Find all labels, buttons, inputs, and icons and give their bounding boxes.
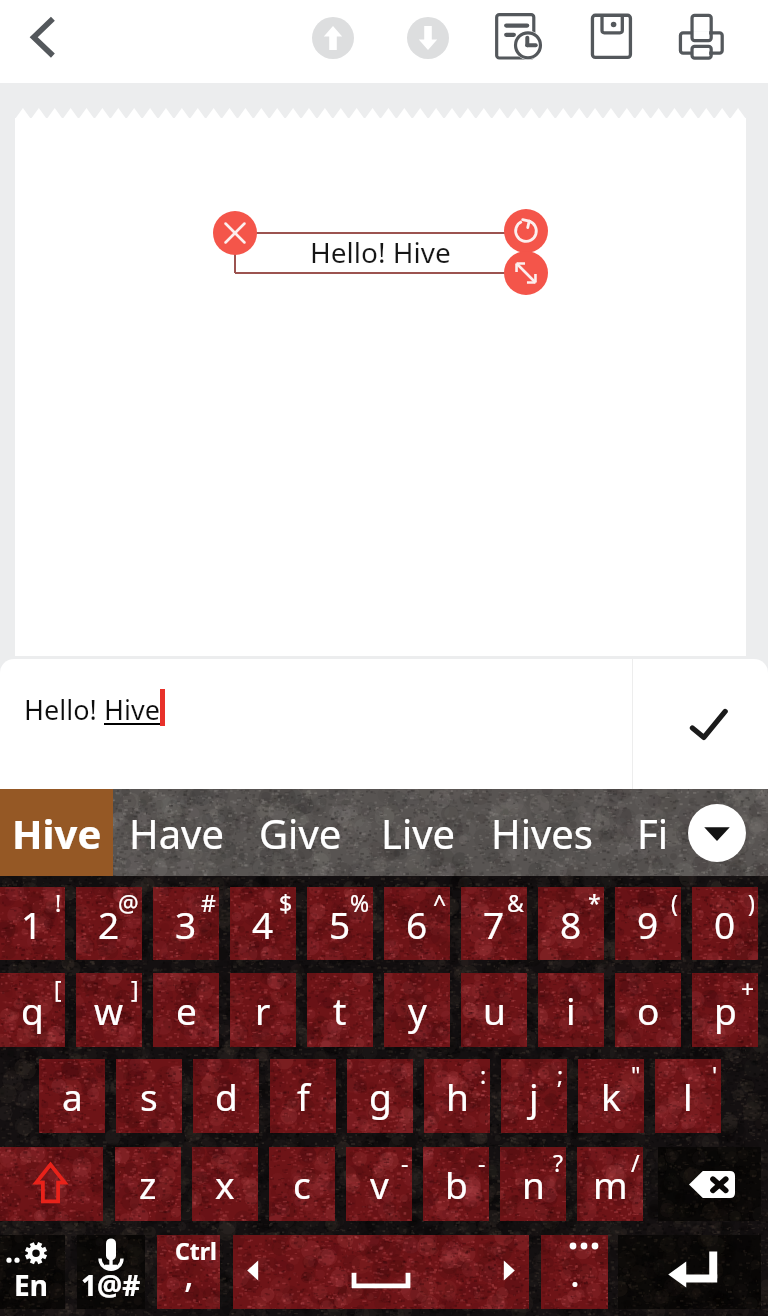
button[interactable]: Redo [407, 17, 449, 59]
button[interactable]: En [0, 1235, 65, 1309]
button[interactable]: Save [582, 9, 640, 67]
button[interactable]: i [538, 973, 604, 1047]
staticText: d [215, 1071, 238, 1121]
button[interactable]: g [347, 1059, 413, 1133]
button[interactable]: z [115, 1147, 181, 1221]
button[interactable]: More suggestions [688, 804, 746, 862]
staticText: : [480, 1059, 487, 1090]
button[interactable]: d [193, 1059, 259, 1133]
staticText: j [529, 1071, 539, 1121]
staticText: * [588, 887, 601, 918]
button[interactable]: s [116, 1059, 182, 1133]
staticText: 6 [406, 899, 428, 949]
staticText: x [215, 1159, 235, 1209]
staticText: [ [54, 973, 62, 1004]
button[interactable]: 5 [307, 887, 373, 960]
button[interactable]: h [424, 1059, 490, 1133]
staticText: & [507, 887, 524, 918]
button[interactable]: Live [360, 789, 476, 876]
button[interactable]: 8 [538, 887, 604, 960]
button[interactable]: k [578, 1059, 644, 1133]
staticText: ( [671, 887, 678, 918]
button[interactable]: Undo [312, 17, 354, 59]
staticText: t [333, 985, 347, 1035]
staticText: ; [557, 1059, 564, 1090]
button[interactable]: e [153, 973, 219, 1047]
staticText: l [683, 1071, 693, 1121]
button[interactable]: t [307, 973, 373, 1047]
staticText: 8 [560, 899, 582, 949]
button[interactable]: o [615, 973, 681, 1047]
button[interactable]: Space [233, 1235, 529, 1309]
staticText: g [369, 1071, 392, 1121]
button[interactable]: Hive [0, 789, 113, 876]
button[interactable]: 7 [461, 887, 527, 960]
staticText: w [94, 985, 124, 1035]
button[interactable]: Shift [0, 1147, 103, 1221]
staticText: o [637, 985, 660, 1035]
button[interactable]: Give [240, 789, 360, 876]
button[interactable]: Resize [504, 251, 548, 295]
staticText: 2 [98, 899, 120, 949]
button[interactable]: p [692, 973, 758, 1047]
button[interactable]: v [346, 1147, 412, 1221]
staticText: 3 [175, 899, 197, 949]
button[interactable]: l [655, 1059, 721, 1133]
button[interactable]: f [270, 1059, 336, 1133]
staticText: q [21, 985, 44, 1035]
staticText: + [741, 973, 755, 1004]
staticText: # [201, 887, 216, 918]
staticText: z [139, 1159, 157, 1209]
button[interactable]: c [269, 1147, 335, 1221]
button[interactable]: b [423, 1147, 489, 1221]
staticText: a [62, 1071, 83, 1121]
button[interactable]: 9 [615, 887, 681, 960]
button[interactable]: Fi [608, 789, 698, 876]
staticText: ^ [433, 887, 447, 918]
button[interactable]: m [577, 1147, 643, 1221]
button[interactable]: 3 [153, 887, 219, 960]
staticText: 1@# [81, 1266, 141, 1304]
button[interactable]: Enter [618, 1235, 761, 1309]
button[interactable]: 4 [230, 887, 296, 960]
staticText: Have [129, 806, 224, 860]
button[interactable]: Back [9, 7, 71, 69]
button[interactable]: Backspace [658, 1147, 761, 1221]
button[interactable]: Hello! [0, 659, 632, 789]
button[interactable]: 6 [384, 887, 450, 960]
button[interactable]: 2 [76, 887, 142, 960]
button[interactable]: . [541, 1235, 608, 1309]
staticText: Fi [637, 806, 669, 860]
button[interactable]: Delete [213, 211, 257, 255]
button[interactable]: 1 [0, 887, 65, 960]
button[interactable]: r [230, 973, 296, 1047]
staticText: ? [553, 1147, 563, 1178]
button[interactable]: w [76, 973, 142, 1047]
staticText: % [350, 887, 370, 918]
button[interactable]: a [39, 1059, 105, 1133]
button[interactable]: , [157, 1235, 220, 1309]
button[interactable]: u [461, 973, 527, 1047]
button[interactable]: Hives [476, 789, 608, 876]
staticText: 9 [637, 899, 659, 949]
button[interactable]: 1@# [77, 1235, 145, 1309]
staticText: Give [259, 806, 342, 860]
button[interactable]: j [501, 1059, 567, 1133]
button[interactable]: q [0, 973, 65, 1047]
button[interactable]: History [490, 9, 548, 67]
staticText: . [570, 1247, 580, 1297]
button[interactable]: Have [113, 789, 240, 876]
staticText: v [370, 1159, 389, 1209]
button[interactable]: 0 [692, 887, 758, 960]
button[interactable]: y [384, 973, 450, 1047]
button[interactable]: Rotate [504, 209, 548, 253]
button[interactable]: n [500, 1147, 566, 1221]
staticText: Hello! [24, 691, 104, 728]
button[interactable]: Print [670, 9, 728, 67]
staticText: m [593, 1159, 628, 1209]
button[interactable]: Confirm [633, 659, 768, 789]
button[interactable]: x [192, 1147, 258, 1221]
staticText: ) [748, 887, 755, 918]
staticText: n [522, 1159, 545, 1209]
staticText: c [293, 1159, 311, 1209]
